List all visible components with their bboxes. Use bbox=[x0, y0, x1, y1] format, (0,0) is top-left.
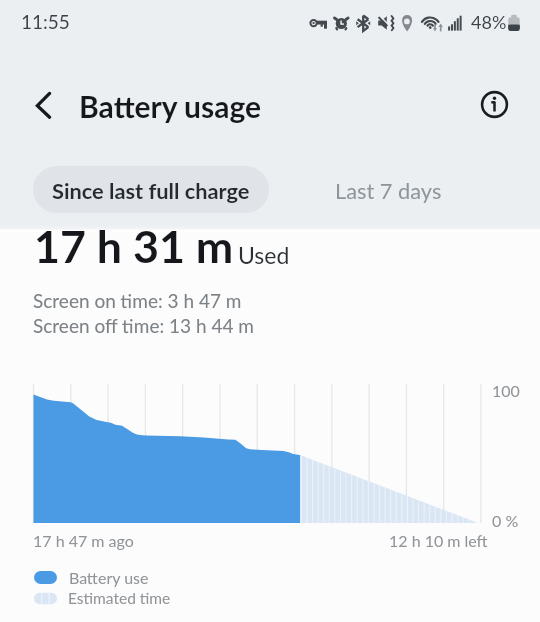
staticText: Screen on time: 3 h 47 m bbox=[33, 289, 242, 312]
button[interactable]: Information bbox=[475, 85, 515, 125]
staticText: 17 h 31 m bbox=[34, 219, 234, 273]
staticText: Estimated time bbox=[68, 589, 171, 608]
staticText: 12 h 10 m left bbox=[389, 531, 488, 550]
staticText: Since last full charge bbox=[52, 177, 250, 203]
staticText: Last 7 days bbox=[335, 177, 442, 203]
button[interactable]: Navigate up bbox=[23, 85, 63, 125]
staticText: 100 bbox=[492, 381, 520, 400]
staticText: 11:55 bbox=[21, 10, 70, 33]
staticText: 17 h 47 m ago bbox=[33, 531, 134, 550]
staticText: Battery use bbox=[69, 568, 149, 587]
button[interactable]: Last 7 days bbox=[289, 166, 487, 213]
staticText: 48% bbox=[471, 11, 507, 33]
staticText: Battery usage bbox=[79, 88, 261, 124]
staticText: 0 % bbox=[492, 511, 519, 530]
staticText: Screen off time: 13 h 44 m bbox=[33, 314, 254, 337]
button[interactable]: Since last full charge bbox=[33, 166, 269, 213]
staticText: Used bbox=[238, 241, 290, 269]
